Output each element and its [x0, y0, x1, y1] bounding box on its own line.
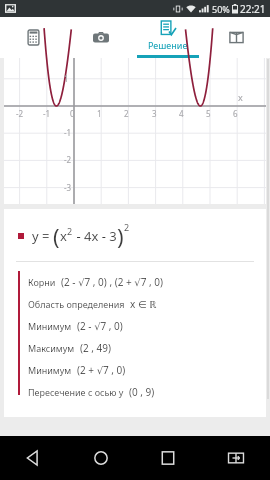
staticText: x ∈ ℝ: [130, 297, 157, 311]
staticText: 5: [206, 108, 211, 119]
staticText: 2: [67, 225, 73, 237]
staticText: -2: [16, 108, 24, 119]
staticText: Минимум: [28, 364, 72, 376]
staticText: Решение: [148, 39, 188, 51]
staticText: 3: [152, 108, 157, 119]
staticText: -1: [43, 108, 51, 119]
staticText: -3: [64, 182, 72, 193]
staticText: (2 + √7 , 0): [77, 363, 126, 377]
staticText: y =: [32, 227, 53, 245]
staticText: Область определения: [28, 298, 125, 310]
staticText: (0 , 9): [129, 385, 155, 399]
button[interactable]: Camera: [67, 17, 134, 58]
staticText: Минимум: [28, 320, 72, 332]
staticText: - 4x - 3: [73, 227, 117, 245]
staticText: 2: [124, 108, 129, 119]
staticText: 4: [179, 108, 184, 119]
staticText: 6: [233, 108, 238, 119]
button[interactable]: Решение: [134, 17, 202, 58]
button[interactable]: Calculator: [0, 17, 67, 58]
button[interactable]: Recents: [134, 436, 202, 480]
staticText: 22:21: [240, 2, 266, 16]
button[interactable]: Back: [0, 436, 67, 480]
button[interactable]: Book: [202, 17, 270, 58]
staticText: (: [53, 221, 60, 251]
staticText: 1: [97, 108, 102, 119]
staticText: (2 - √7 , 0): [77, 319, 123, 333]
staticText: -2: [64, 154, 72, 165]
staticText: ): [117, 221, 124, 251]
staticText: -1: [64, 127, 72, 138]
staticText: x: [238, 91, 243, 103]
staticText: Пересечение с осью y: [28, 386, 124, 398]
staticText: (2 , 49): [80, 341, 112, 355]
staticText: Корни: [28, 276, 56, 288]
staticText: 50%: [212, 3, 230, 15]
staticText: 1: [64, 73, 69, 84]
staticText: (2 - √7 , 0) , (2 + √7 , 0): [61, 275, 164, 289]
staticText: Максимум: [28, 342, 75, 354]
button[interactable]: Split screen: [202, 436, 270, 480]
button[interactable]: Home: [67, 436, 134, 480]
staticText: x: [60, 227, 67, 245]
staticText: 2: [124, 221, 130, 233]
staticText: 0: [70, 108, 75, 119]
